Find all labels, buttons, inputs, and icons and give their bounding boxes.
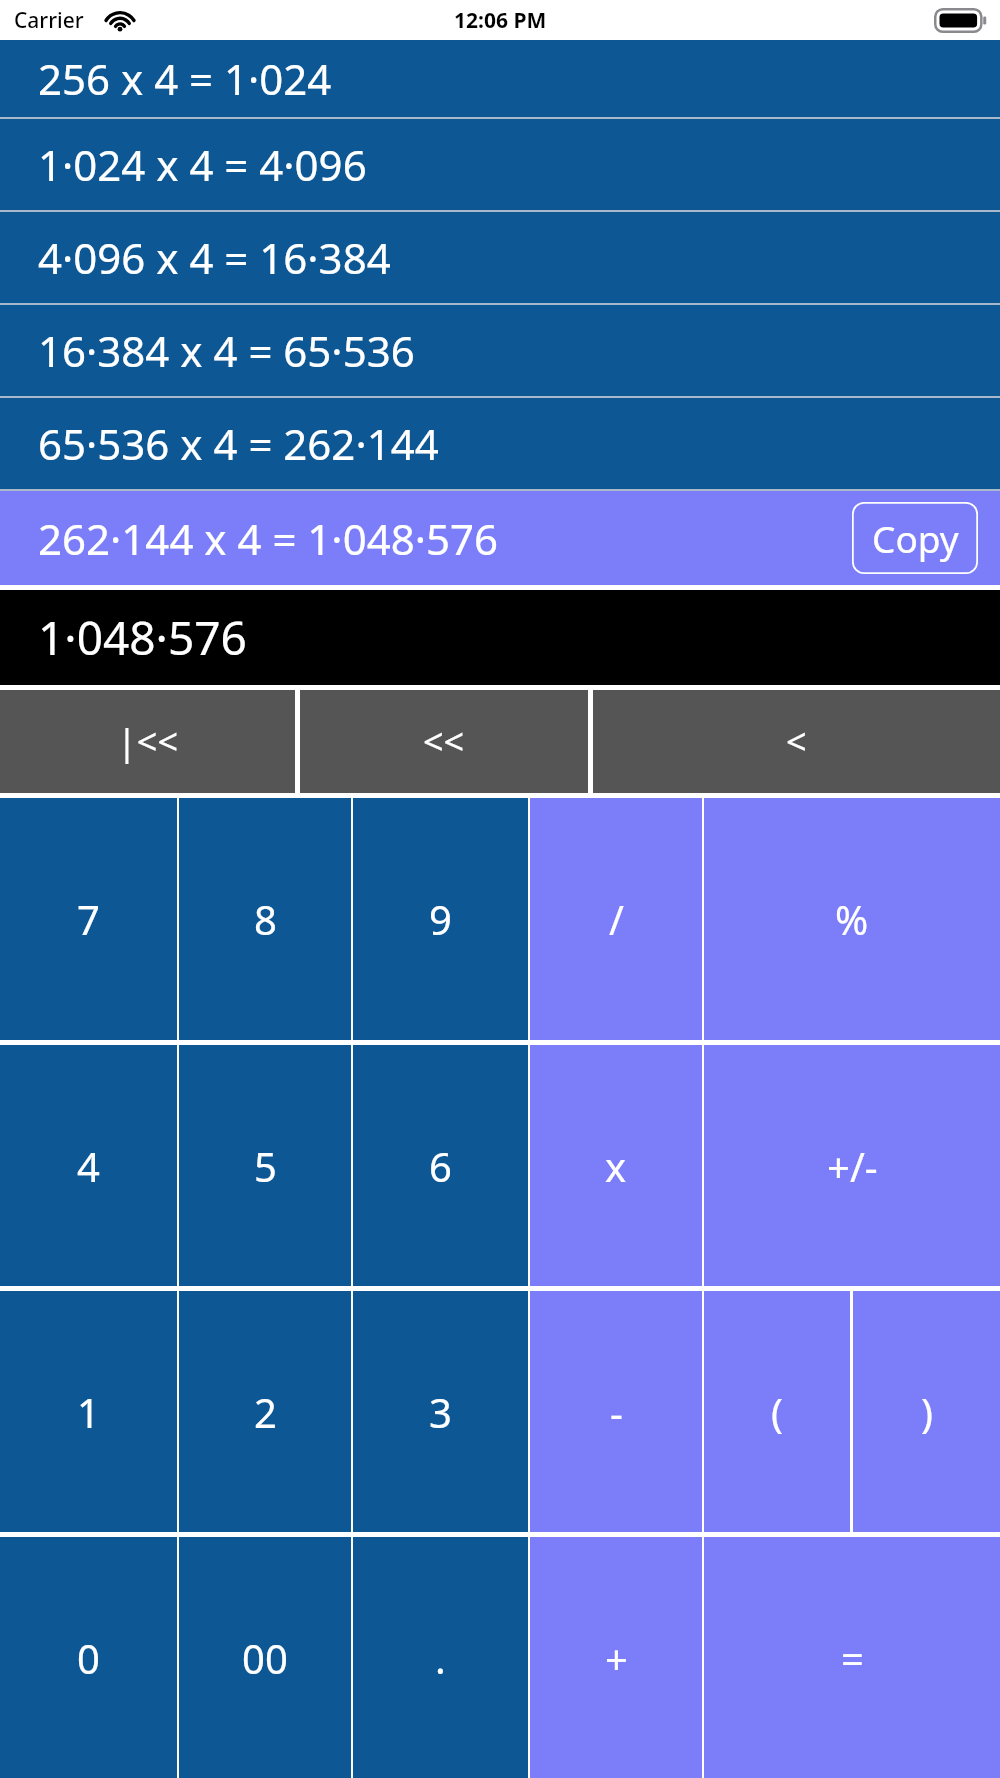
button[interactable]: 7 xyxy=(0,798,177,1040)
staticText: < xyxy=(786,717,807,766)
staticText: 2 xyxy=(254,1385,277,1439)
staticText: 4·096 x 4 = 16·384 xyxy=(38,229,391,286)
staticText: % xyxy=(835,892,869,946)
staticText: 6 xyxy=(429,1139,452,1193)
button[interactable]: 4·096 x 4 = 16·384 xyxy=(0,212,1000,303)
button[interactable]: 5 xyxy=(179,1045,351,1286)
button[interactable]: - xyxy=(530,1291,702,1532)
button[interactable]: 3 xyxy=(353,1291,528,1532)
staticText: Copy xyxy=(872,513,959,563)
button[interactable]: . xyxy=(353,1537,528,1778)
staticText: 5 xyxy=(254,1139,277,1193)
staticText: 3 xyxy=(429,1385,452,1439)
staticText: Carrier xyxy=(14,6,84,35)
staticText: 16·384 x 4 = 65·536 xyxy=(38,322,415,379)
staticText: 4 xyxy=(77,1139,100,1193)
staticText: 1·024 x 4 = 4·096 xyxy=(38,136,367,193)
button[interactable]: 262·144 x 4 = 1·048·576 xyxy=(0,491,1000,585)
button[interactable]: First xyxy=(0,690,295,793)
button[interactable]: 16·384 x 4 = 65·536 xyxy=(0,305,1000,396)
staticText: 0 xyxy=(77,1631,100,1685)
button[interactable]: % xyxy=(704,798,1000,1040)
staticText: 1 xyxy=(77,1385,100,1439)
button[interactable]: 65·536 x 4 = 262·144 xyxy=(0,398,1000,489)
button[interactable]: 1·024 x 4 = 4·096 xyxy=(0,119,1000,210)
staticText: - xyxy=(610,1385,623,1439)
button[interactable]: x xyxy=(530,1045,702,1286)
button[interactable]: ( xyxy=(704,1291,850,1532)
button[interactable]: 8 xyxy=(179,798,351,1040)
staticText: ) xyxy=(921,1385,933,1439)
button[interactable]: 4 xyxy=(0,1045,177,1286)
staticText: +/- xyxy=(827,1139,878,1193)
button[interactable]: / xyxy=(530,798,702,1040)
staticText: 00 xyxy=(242,1631,288,1685)
button[interactable]: 256 x 4 = 1·024 xyxy=(0,40,1000,117)
staticText: ( xyxy=(771,1385,783,1439)
button[interactable]: 1 xyxy=(0,1291,177,1532)
button[interactable]: Copy xyxy=(852,502,978,574)
staticText: 65·536 x 4 = 262·144 xyxy=(38,415,439,472)
staticText: 262·144 x 4 = 1·048·576 xyxy=(38,510,499,567)
button[interactable]: Back xyxy=(593,690,1000,793)
staticText: 256 x 4 = 1·024 xyxy=(38,50,332,107)
button[interactable]: 0 xyxy=(0,1537,177,1778)
button[interactable]: Previous page xyxy=(300,690,588,793)
staticText: 1·048·576 xyxy=(38,606,247,669)
staticText: 12:06 PM xyxy=(454,6,547,35)
staticText: . xyxy=(435,1631,446,1685)
button[interactable]: ) xyxy=(853,1291,1000,1532)
button[interactable]: 2 xyxy=(179,1291,351,1532)
staticText: |<< xyxy=(117,717,179,766)
button[interactable]: + xyxy=(530,1537,702,1778)
button[interactable]: +/- xyxy=(704,1045,1000,1286)
button[interactable]: 6 xyxy=(353,1045,528,1286)
staticText: 7 xyxy=(77,892,100,946)
staticText: x xyxy=(605,1139,627,1193)
staticText: = xyxy=(841,1631,864,1685)
staticText: 9 xyxy=(429,892,452,946)
staticText: + xyxy=(605,1631,628,1685)
button[interactable]: = xyxy=(704,1537,1000,1778)
button[interactable]: 9 xyxy=(353,798,528,1040)
staticText: 8 xyxy=(254,892,277,946)
staticText: / xyxy=(609,892,624,946)
staticText: << xyxy=(423,717,465,766)
button[interactable]: 00 xyxy=(179,1537,351,1778)
